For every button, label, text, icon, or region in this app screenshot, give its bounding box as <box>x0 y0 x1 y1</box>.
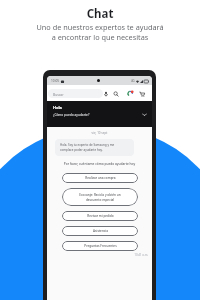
staticText: Por favor, cuéntame cómo puedo ayudarte … <box>51 162 148 166</box>
button[interactable]: Revisar mi pedido <box>62 211 138 221</box>
staticText: ¿Cómo puedo ayudarte? <box>53 113 90 117</box>
button[interactable]: Realizar una compra <box>62 173 138 183</box>
staticText: Hola. Soy tu experto de Samsung y me com… <box>60 143 115 152</box>
button[interactable]: Samsung Rewards <box>127 90 134 97</box>
staticText: Uno de nuestros expertos te ayudará a en… <box>0 22 200 42</box>
staticText: Buscar <box>53 92 64 96</box>
button[interactable]: Carrito de compras <box>139 91 145 97</box>
staticText: Revisar mi pedido <box>87 214 114 218</box>
button[interactable]: Asistencia <box>62 226 138 236</box>
staticText: 10:41 a.m. <box>51 253 148 257</box>
staticText: Asistencia <box>93 229 108 233</box>
button[interactable]: Preguntas Frecuentes <box>62 241 138 251</box>
button[interactable]: Buscar <box>113 91 119 97</box>
button[interactable]: Buscar <box>48 89 103 98</box>
staticText: Hola <box>53 105 62 110</box>
button[interactable]: Ecocanje: Recicla y obtén un descuento e… <box>62 188 138 206</box>
staticText: vie, 10 sept <box>51 131 148 135</box>
other: Contraer <box>141 111 148 118</box>
staticText: Chat <box>0 6 200 22</box>
staticText: Ecocanje: Recicla y obtén un descuento e… <box>79 193 121 202</box>
button[interactable]: Búsqueda por voz <box>103 91 109 97</box>
button[interactable]: Hola <box>47 101 152 127</box>
staticText: 4G <box>131 79 135 83</box>
staticText: Realizar una compra <box>85 176 116 180</box>
staticText: Preguntas Frecuentes <box>84 244 117 248</box>
staticText: 10:05 <box>51 79 60 83</box>
